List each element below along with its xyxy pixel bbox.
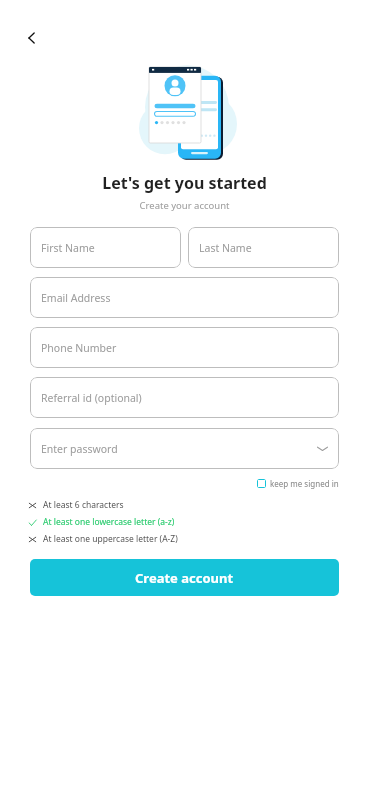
button[interactable]: Last Name — [188, 227, 339, 268]
button[interactable]: Enter password — [30, 428, 339, 469]
button[interactable]: Referral id (optional) — [30, 377, 339, 418]
staticText: At least one lowercase letter (a-z) — [43, 516, 175, 528]
button[interactable]: Email Address — [30, 277, 339, 318]
staticText: Create your account — [0, 199, 369, 212]
staticText: Phone Number — [41, 341, 117, 355]
button[interactable]: keep me signed in — [257, 476, 339, 491]
staticText: Email Address — [41, 291, 111, 305]
staticText: At least one uppercase letter (A-Z) — [43, 533, 178, 545]
staticText: Enter password — [41, 442, 118, 456]
button[interactable]: Phone Number — [30, 327, 339, 368]
staticText: Let's get you started — [0, 172, 369, 194]
staticText: Create account — [135, 569, 234, 587]
button[interactable]: Create account — [30, 559, 339, 596]
button[interactable]: First Name — [30, 227, 181, 268]
staticText: At least 6 characters — [43, 499, 124, 511]
staticText: Last Name — [199, 241, 252, 255]
staticText: First Name — [41, 241, 95, 255]
button[interactable]: Back — [14, 20, 50, 56]
staticText: keep me signed in — [270, 478, 339, 489]
staticText: Referral id (optional) — [41, 391, 142, 405]
